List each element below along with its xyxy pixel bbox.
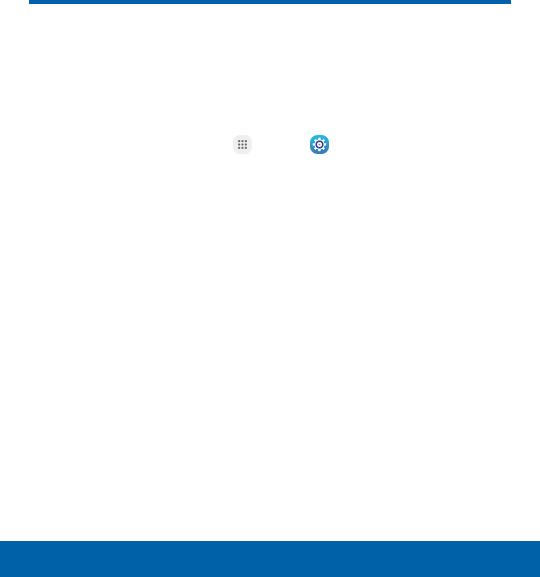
button[interactable]: Settings bbox=[310, 135, 329, 154]
button[interactable]: Apps bbox=[233, 135, 252, 154]
